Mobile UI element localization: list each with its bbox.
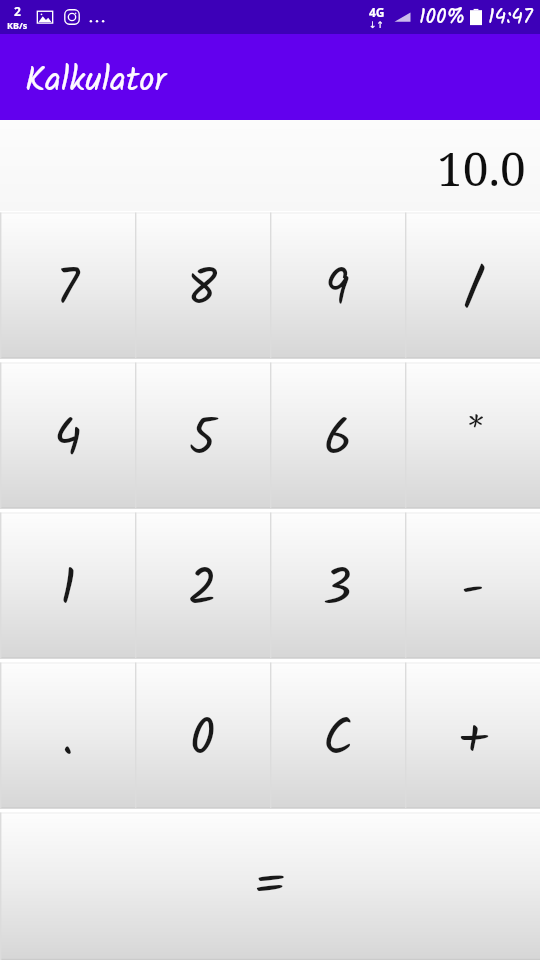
button[interactable]: - <box>405 511 540 661</box>
staticText: 2 <box>188 551 218 631</box>
staticText: 0 <box>190 701 215 781</box>
staticText: - <box>461 551 484 631</box>
staticText: KB/s <box>7 19 28 31</box>
button[interactable]: 7 <box>0 211 135 361</box>
staticText: 4G <box>369 4 385 20</box>
staticText: 3 <box>323 551 352 631</box>
button[interactable]: C <box>270 661 405 811</box>
staticText: 8 <box>187 251 218 331</box>
staticText: ↓↑ <box>369 20 385 30</box>
staticText: 9 <box>325 251 350 331</box>
button[interactable]: 6 <box>270 361 405 511</box>
staticText: . <box>62 701 74 781</box>
button[interactable]: / <box>405 211 540 361</box>
button[interactable]: 4 <box>0 361 135 511</box>
staticText: = <box>254 848 286 928</box>
staticText: 5 <box>189 401 216 481</box>
staticText: * <box>464 401 482 481</box>
button[interactable]: 1 <box>0 511 135 661</box>
staticText: 1 <box>60 551 76 631</box>
staticText: + <box>458 701 488 781</box>
staticText: 14:47 <box>488 1 533 34</box>
staticText: 6 <box>324 401 352 481</box>
button[interactable]: = <box>0 811 540 960</box>
button[interactable]: * <box>405 361 540 511</box>
staticText: 10.0 <box>437 137 526 200</box>
button[interactable]: 0 <box>135 661 270 811</box>
button[interactable]: 9 <box>270 211 405 361</box>
staticText: 2 <box>14 3 21 19</box>
staticText: / <box>464 251 482 331</box>
staticText: C <box>323 701 353 781</box>
button[interactable]: 2 <box>135 511 270 661</box>
staticText: 7 <box>56 251 80 331</box>
staticText: 100% <box>419 1 466 34</box>
button[interactable]: 3 <box>270 511 405 661</box>
staticText: Kalkulator <box>25 55 166 109</box>
button[interactable]: + <box>405 661 540 811</box>
staticText: 4 <box>54 401 82 481</box>
button[interactable]: . <box>0 661 135 811</box>
button[interactable]: 5 <box>135 361 270 511</box>
button[interactable]: 8 <box>135 211 270 361</box>
button[interactable]: Kalkulator <box>0 34 540 120</box>
